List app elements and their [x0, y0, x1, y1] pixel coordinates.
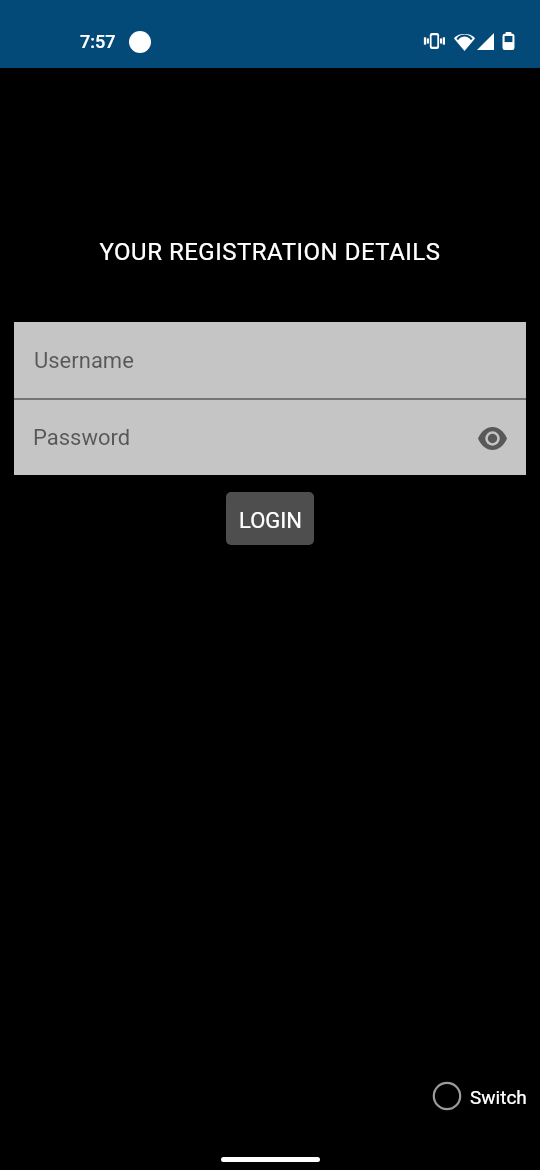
staticText: Username — [34, 348, 134, 374]
staticText: Switch — [470, 1086, 527, 1108]
button[interactable]: Switch — [429, 1073, 530, 1119]
button[interactable]: Username — [14, 322, 526, 398]
button[interactable]: Show password — [474, 420, 510, 456]
button[interactable]: Password — [14, 400, 526, 475]
staticText: LOGIN — [239, 508, 302, 534]
staticText: Password — [33, 425, 131, 451]
button[interactable]: LOGIN — [226, 492, 314, 545]
staticText: YOUR REGISTRATION DETAILS — [0, 238, 540, 266]
staticText: 7:57 — [80, 31, 116, 52]
